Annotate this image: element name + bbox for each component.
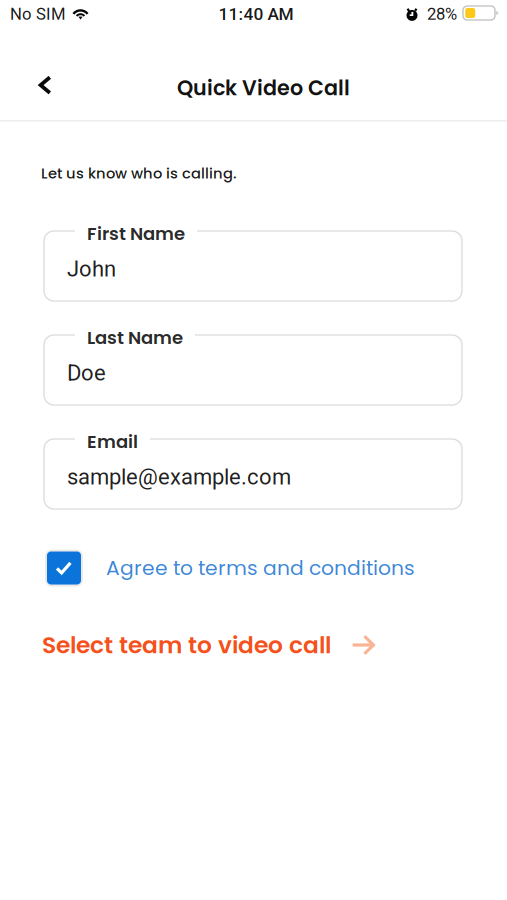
staticText: No SIM xyxy=(10,4,66,24)
staticText: Quick Video Call xyxy=(177,73,350,102)
staticText: Doe xyxy=(67,360,106,386)
staticText: Last Name xyxy=(87,325,183,350)
staticText: Let us know who is calling. xyxy=(41,163,237,183)
button[interactable]: Back xyxy=(23,63,67,113)
staticText: 28% xyxy=(427,4,457,24)
staticText: Email xyxy=(87,429,138,454)
staticText: sample@example.com xyxy=(67,464,291,490)
staticText: John xyxy=(67,256,116,282)
button[interactable]: Agree to terms and conditions xyxy=(45,546,465,590)
staticText: 11:40 AM xyxy=(218,4,293,24)
staticText: Select team to video call xyxy=(42,629,331,661)
staticText: Agree to terms and conditions xyxy=(106,554,415,582)
staticText: First Name xyxy=(87,221,185,246)
button[interactable]: Select team to video call xyxy=(42,625,462,665)
